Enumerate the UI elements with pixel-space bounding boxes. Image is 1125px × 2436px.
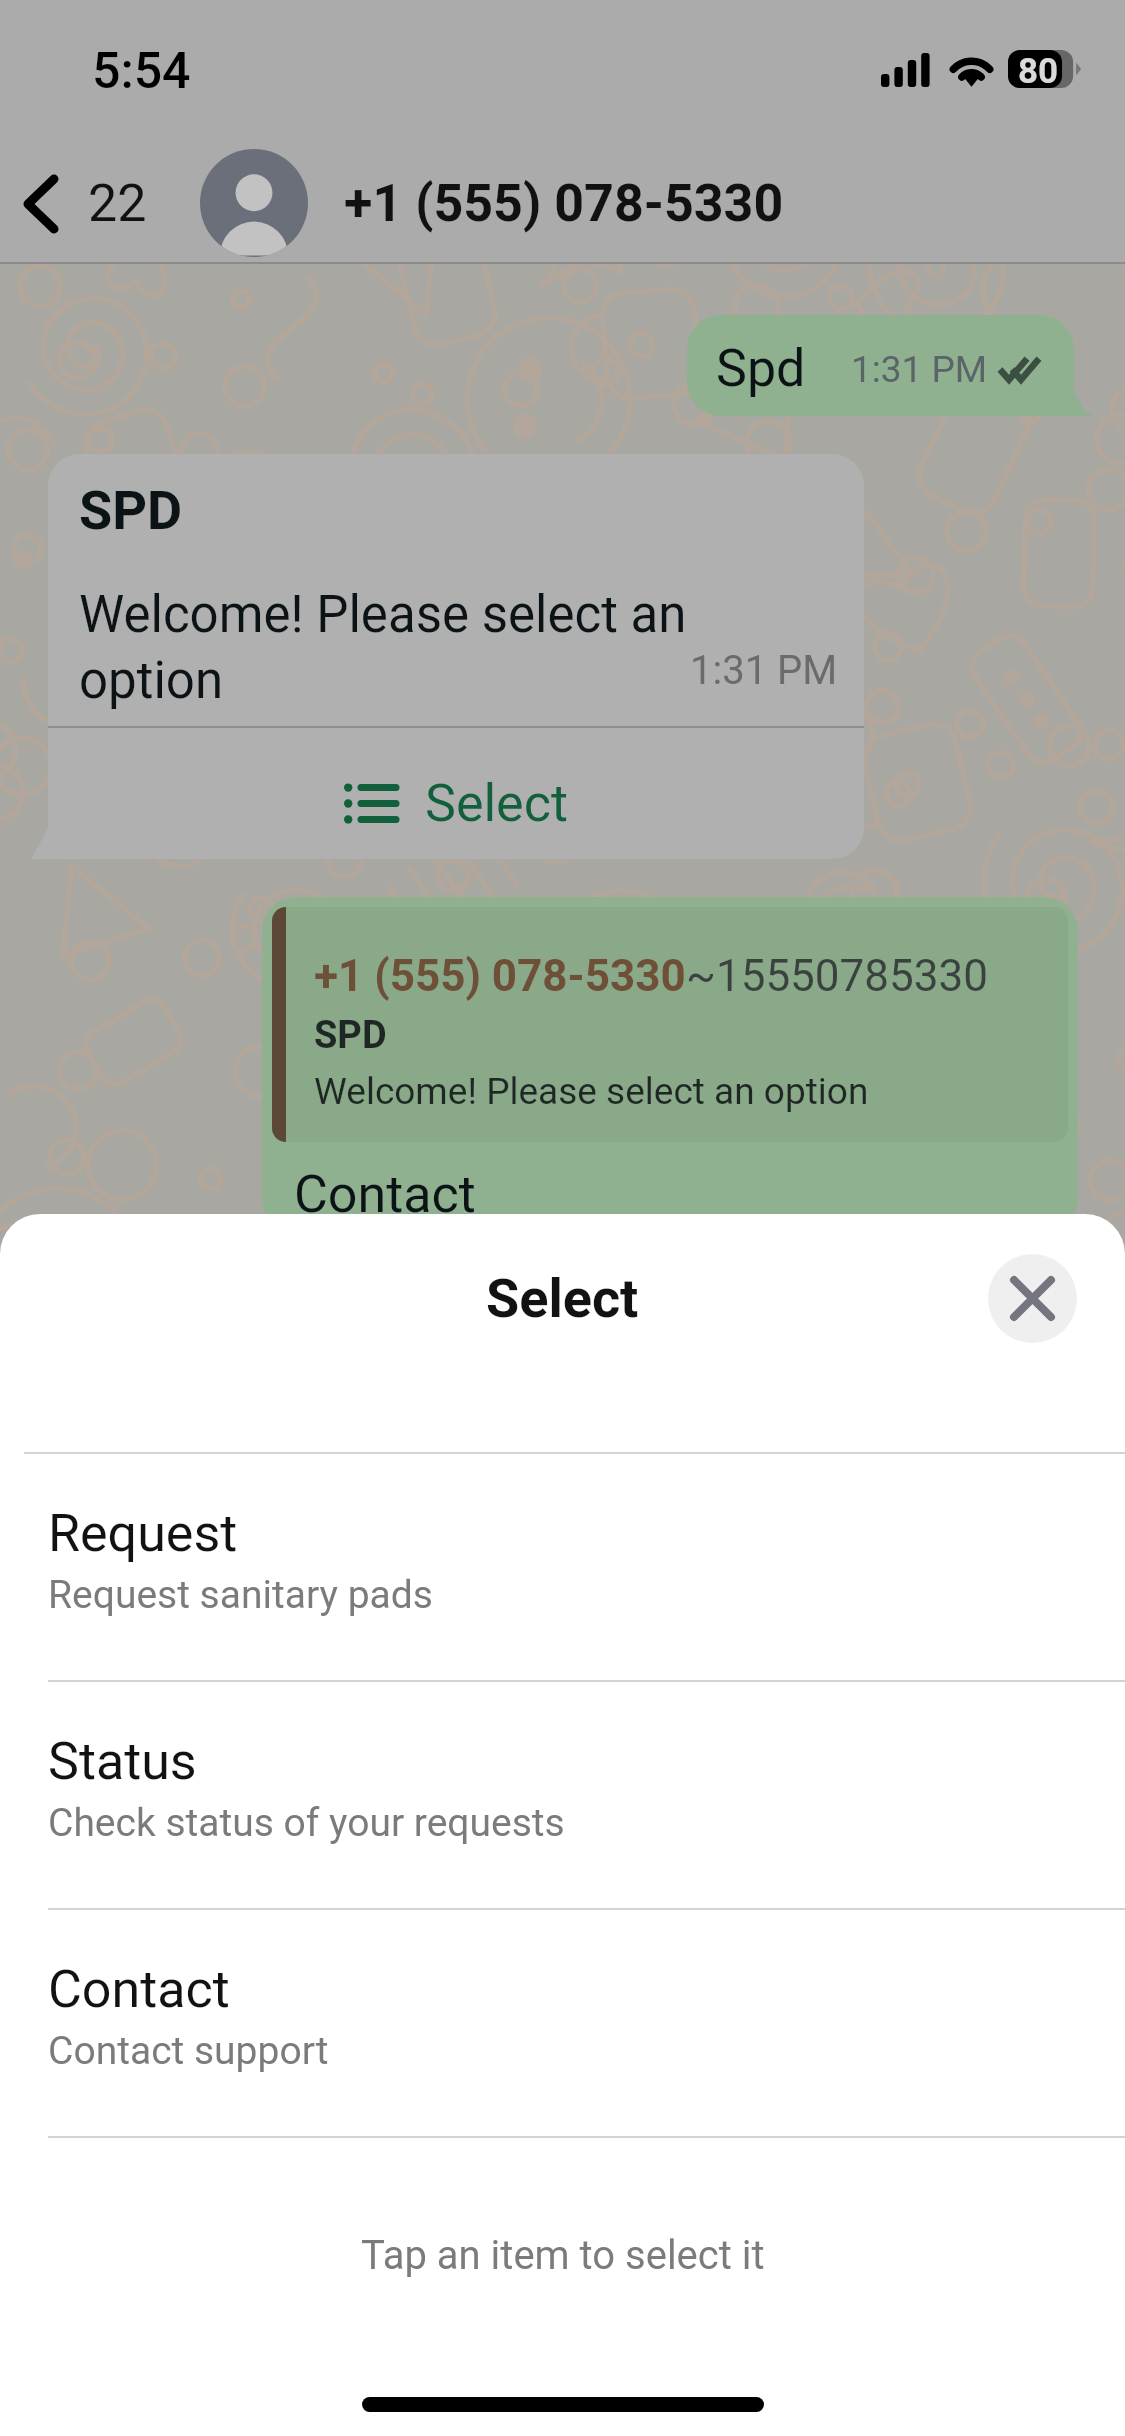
staticText: Check status of your requests: [48, 1800, 565, 1846]
button[interactable]: Request: [0, 1454, 1125, 1680]
staticText: Select: [425, 773, 568, 834]
staticText: 1:31 PM: [690, 647, 838, 694]
staticText: Request: [48, 1503, 238, 1564]
button[interactable]: +1 (555) 078-5330: [200, 144, 808, 262]
staticText: Contact: [294, 1164, 476, 1225]
staticText: +1 (555) 078-5330: [344, 173, 784, 234]
staticText: 1:31 PM: [851, 348, 988, 391]
staticText: Welcome! Please select an option: [314, 1070, 869, 1113]
staticText: 22: [88, 173, 147, 234]
staticText: Welcome! Please select an option: [79, 585, 699, 711]
button[interactable]: Status: [0, 1682, 1125, 1908]
other: Back: [24, 175, 58, 233]
staticText: +1 (555) 078-5330: [314, 950, 686, 1002]
staticText: Status: [48, 1731, 197, 1792]
button[interactable]: Select: [48, 728, 864, 859]
staticText: Request sanitary pads: [48, 1572, 433, 1618]
staticText: 80: [1018, 51, 1059, 89]
staticText: SPD: [79, 479, 183, 542]
button[interactable]: Close: [988, 1254, 1077, 1343]
staticText: SPD: [314, 1013, 387, 1058]
staticText: ~15550785330: [686, 950, 988, 1002]
staticText: Contact support: [48, 2028, 329, 2074]
staticText: 5:54: [92, 42, 191, 101]
staticText: Tap an item to select it: [361, 2232, 765, 2279]
button[interactable]: Contact: [0, 1910, 1125, 2136]
staticText: Select: [486, 1267, 639, 1330]
button[interactable]: Back: [0, 163, 157, 244]
staticText: Contact: [48, 1959, 230, 2020]
staticText: Spd: [716, 338, 806, 399]
